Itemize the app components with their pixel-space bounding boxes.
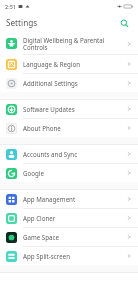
staticText: Digital Wellbeing & Parental Controls bbox=[23, 36, 122, 52]
button[interactable]: Search bbox=[117, 16, 131, 30]
button[interactable]: App Split-screen bbox=[0, 247, 138, 265]
staticText: 2:51 bbox=[5, 3, 16, 10]
staticText: Game Space bbox=[23, 233, 122, 241]
button[interactable]: About Phone bbox=[0, 119, 138, 137]
staticText: App Split-screen bbox=[23, 252, 122, 260]
button[interactable]: App Cloner bbox=[0, 209, 138, 227]
staticText: App Cloner bbox=[23, 214, 122, 222]
button[interactable]: Game Space bbox=[0, 228, 138, 246]
staticText: Settings bbox=[6, 17, 38, 28]
button[interactable]: Software Updates bbox=[0, 100, 138, 118]
staticText: Google bbox=[23, 169, 122, 177]
staticText: Software Updates bbox=[23, 105, 122, 113]
staticText: Additional Settings bbox=[23, 79, 122, 87]
staticText: About Phone bbox=[23, 124, 122, 132]
button[interactable]: Additional Settings bbox=[0, 74, 138, 92]
button[interactable]: Digital Wellbeing & Parental Controls bbox=[0, 33, 138, 54]
staticText: Accounts and Sync bbox=[23, 150, 122, 158]
staticText: Language & Region bbox=[23, 60, 122, 68]
button[interactable]: App Management bbox=[0, 190, 138, 208]
button[interactable]: Google bbox=[0, 164, 138, 182]
staticText: App Management bbox=[23, 195, 122, 203]
button[interactable]: Language & Region bbox=[0, 55, 138, 73]
button[interactable]: Accounts and Sync bbox=[0, 145, 138, 163]
